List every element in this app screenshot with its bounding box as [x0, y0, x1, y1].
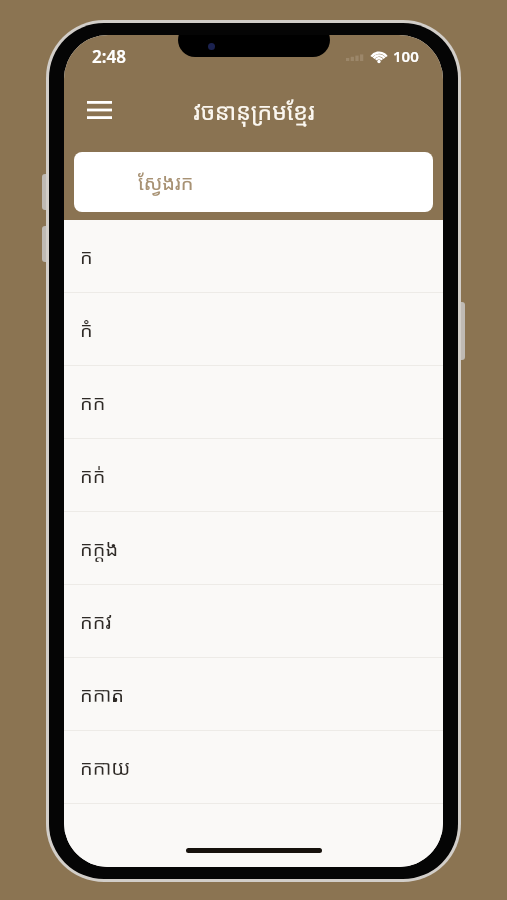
staticText: កក: [80, 389, 106, 416]
staticText: កក់: [80, 462, 106, 489]
staticText: 2:48: [92, 45, 126, 68]
button[interactable]: ស្វែងរក: [74, 152, 433, 212]
button[interactable]: កកាយ: [64, 731, 443, 804]
staticText: កកាយ: [80, 754, 131, 781]
staticText: កក្ដង: [80, 535, 119, 562]
staticText: កកវ: [80, 608, 112, 635]
button[interactable]: កកវ: [64, 585, 443, 658]
staticText: 100: [393, 46, 419, 66]
button[interactable]: កក់: [64, 439, 443, 512]
staticText: វចនានុក្រមខ្មែរ: [193, 95, 315, 126]
button[interactable]: កក្ដង: [64, 512, 443, 585]
staticText: ស្វែងរក: [138, 169, 194, 196]
button[interactable]: កក: [64, 366, 443, 439]
staticText: កកាត: [80, 681, 124, 708]
button[interactable]: Open navigation menu: [76, 87, 122, 133]
staticText: ក: [80, 243, 93, 270]
staticText: កំ: [80, 316, 93, 343]
button[interactable]: ក: [64, 220, 443, 293]
button[interactable]: កំ: [64, 293, 443, 366]
button[interactable]: កកាត: [64, 658, 443, 731]
